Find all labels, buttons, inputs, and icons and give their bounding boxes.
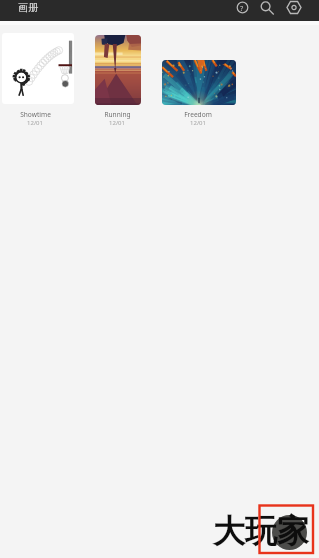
button[interactable] <box>162 60 236 105</box>
button[interactable]: Settings <box>283 0 305 15</box>
staticText: Freedom <box>184 110 212 119</box>
button[interactable] <box>2 33 74 104</box>
staticText: 大玩家 <box>213 511 309 551</box>
button[interactable]: Help <box>231 0 253 15</box>
button[interactable]: Add photo <box>272 515 307 550</box>
button[interactable]: Search <box>255 0 278 15</box>
staticText: Running <box>104 110 131 119</box>
staticText: Showtime <box>20 110 51 119</box>
staticText: ? <box>240 3 244 13</box>
staticText: 12/01 <box>109 119 125 127</box>
staticText: 12/01 <box>190 119 206 127</box>
staticText: 12/01 <box>27 119 43 127</box>
staticText: 画册 <box>18 1 38 14</box>
button[interactable] <box>95 35 141 105</box>
